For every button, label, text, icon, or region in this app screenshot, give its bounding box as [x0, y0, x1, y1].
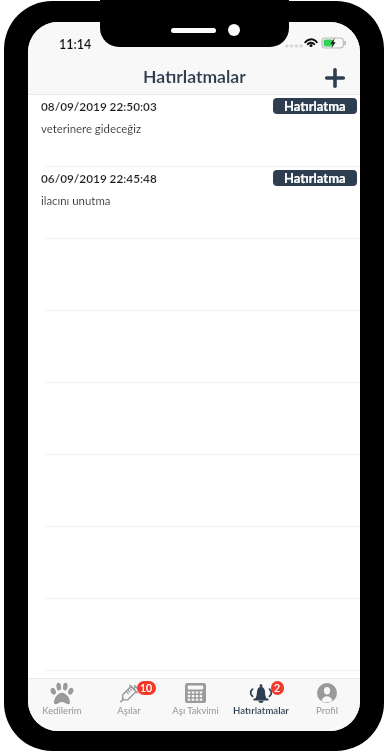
- staticText: 2: [274, 682, 281, 695]
- staticText: 11:14: [59, 37, 92, 52]
- button[interactable]: Kedilerim: [28, 678, 95, 731]
- button[interactable]: Hatırlatma ekle: [317, 60, 353, 96]
- button[interactable]: 2: [228, 678, 294, 731]
- staticText: Hatırlatmalar: [143, 66, 246, 87]
- button[interactable]: 08/09/2019 22:50:03: [28, 95, 360, 167]
- staticText: Profil: [316, 705, 338, 716]
- button[interactable]: 10: [95, 678, 162, 731]
- staticText: Hatırlatma: [284, 170, 346, 186]
- staticText: 06/09/2019 22:45:48: [41, 171, 157, 185]
- staticText: 10: [140, 682, 153, 695]
- button[interactable]: 06/09/2019 22:45:48: [28, 167, 360, 239]
- staticText: veterinere gideceğiz: [41, 122, 142, 136]
- staticText: Hatırlatma: [284, 98, 346, 114]
- staticText: Aşı Takvimi: [172, 705, 219, 716]
- staticText: ilacını unutma: [41, 194, 111, 208]
- staticText: Hatırlatmalar: [233, 705, 289, 716]
- staticText: Kedilerim: [42, 705, 82, 716]
- button[interactable]: Aşı Takvimi: [162, 678, 228, 731]
- staticText: 08/09/2019 22:50:03: [41, 99, 157, 113]
- staticText: Aşılar: [117, 705, 141, 716]
- button[interactable]: Profil: [294, 678, 360, 731]
